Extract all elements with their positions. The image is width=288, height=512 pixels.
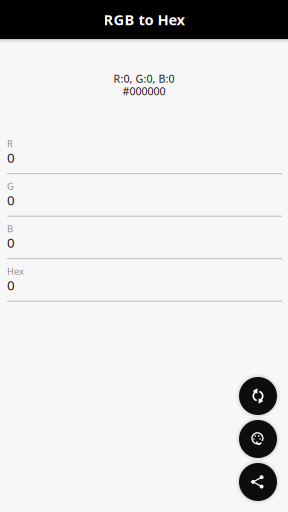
staticText: RGB to Hex [103,10,184,29]
button[interactable]: B [7,225,282,268]
staticText: 0 [7,276,15,294]
staticText: B [7,222,13,235]
staticText: 0 [7,191,15,209]
staticText: R [7,137,13,150]
button[interactable]: R [7,140,282,183]
staticText: #000000 [122,84,165,98]
staticText: 0 [7,234,15,251]
button[interactable]: Pick colour [236,417,280,461]
staticText: 0 [7,149,15,166]
staticText: R:0, G:0, B:0 [113,71,174,86]
button[interactable]: G [7,183,282,225]
button[interactable]: Swap [236,374,280,418]
staticText: Hex [7,265,24,277]
staticText: G [7,180,14,192]
button[interactable]: Hex [7,268,282,310]
button[interactable]: Share [236,460,280,504]
